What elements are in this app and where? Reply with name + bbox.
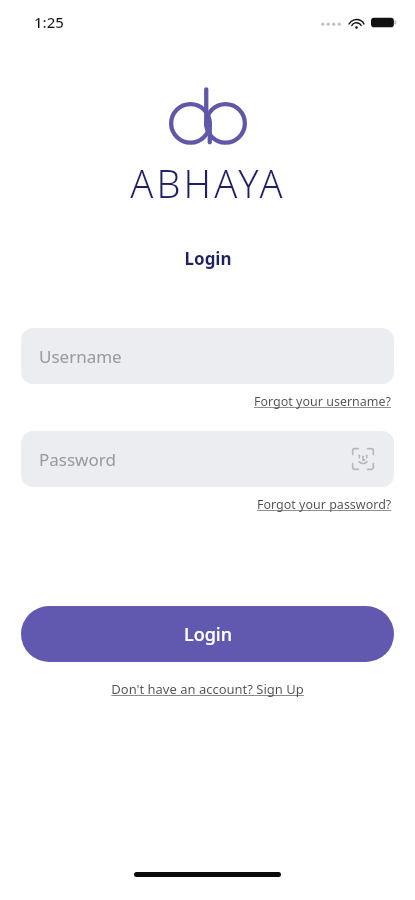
- staticText: 1:25: [34, 12, 64, 32]
- button[interactable]: Password: [21, 431, 394, 487]
- button[interactable]: Face ID: [350, 446, 376, 472]
- staticText: Don't have an account? Sign Up: [111, 680, 304, 698]
- button[interactable]: Forgot your username?: [252, 392, 394, 411]
- staticText: Login: [184, 622, 232, 647]
- staticText: Forgot your username?: [254, 393, 392, 410]
- staticText: Username: [39, 345, 122, 368]
- button[interactable]: Username: [21, 328, 394, 384]
- button[interactable]: Forgot your password?: [255, 495, 394, 514]
- staticText: Password: [39, 448, 116, 471]
- staticText: ABHAYA: [130, 157, 286, 209]
- button[interactable]: Don't have an account? Sign Up: [107, 678, 308, 700]
- staticText: Forgot your password?: [257, 496, 392, 513]
- button[interactable]: Login: [21, 606, 394, 662]
- staticText: Login: [184, 247, 232, 270]
